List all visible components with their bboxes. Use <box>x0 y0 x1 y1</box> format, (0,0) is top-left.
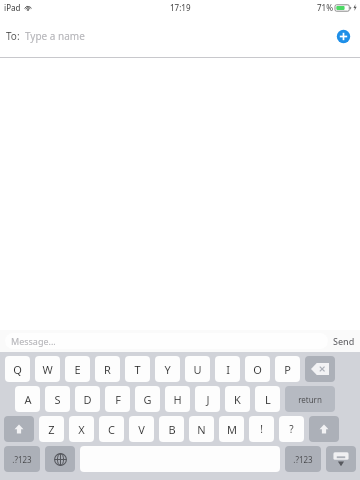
button[interactable]: C <box>99 416 124 442</box>
staticText: J <box>206 392 210 407</box>
staticText: U <box>193 362 202 377</box>
button[interactable]: Add contact <box>334 27 352 45</box>
staticText: F <box>115 392 121 407</box>
button[interactable]: V <box>129 416 154 442</box>
staticText: ? <box>289 422 294 436</box>
button[interactable]: P <box>275 356 300 382</box>
staticText: C <box>108 422 115 437</box>
button[interactable]: .?123 <box>4 446 40 472</box>
button[interactable]: I <box>215 356 240 382</box>
staticText: .?123 <box>293 454 313 465</box>
staticText: E <box>74 362 81 377</box>
staticText: Q <box>13 362 22 377</box>
staticText: ! <box>260 422 263 436</box>
staticText: Message... <box>11 335 56 347</box>
staticText: K <box>234 392 241 407</box>
button[interactable]: ! <box>249 416 274 442</box>
staticText: I <box>226 362 230 377</box>
staticText: iPad <box>4 2 21 13</box>
staticText: N <box>197 422 206 437</box>
button[interactable]: T <box>125 356 150 382</box>
button[interactable]: Change keyboard language <box>45 446 75 472</box>
staticText: G <box>143 392 152 407</box>
staticText: S <box>54 392 61 407</box>
staticText: Z <box>48 422 55 437</box>
button[interactable]: Hide keyboard <box>326 446 356 472</box>
button[interactable]: ? <box>279 416 304 442</box>
button[interactable]: W <box>35 356 60 382</box>
button[interactable]: G <box>135 386 160 412</box>
button[interactable]: A <box>15 386 40 412</box>
button[interactable]: M <box>219 416 244 442</box>
staticText: T <box>134 362 141 377</box>
button[interactable]: B <box>159 416 184 442</box>
button[interactable]: S <box>45 386 70 412</box>
button[interactable]: N <box>189 416 214 442</box>
staticText: D <box>83 392 92 407</box>
button[interactable]: .?123 <box>285 446 321 472</box>
button[interactable]: Type a name <box>25 29 85 43</box>
button[interactable]: Z <box>39 416 64 442</box>
button[interactable]: L <box>255 386 280 412</box>
button[interactable]: Message... <box>5 333 328 349</box>
button[interactable]: J <box>195 386 220 412</box>
staticText: W <box>42 362 53 377</box>
staticText: H <box>173 392 182 407</box>
button[interactable]: Y <box>155 356 180 382</box>
staticText: M <box>227 422 237 437</box>
staticText: return <box>298 394 322 405</box>
staticText: R <box>104 362 111 377</box>
staticText: X <box>78 422 85 437</box>
button[interactable]: return <box>285 386 335 412</box>
button[interactable]: E <box>65 356 90 382</box>
staticText: Send <box>333 335 355 347</box>
staticText: Y <box>164 362 171 377</box>
staticText: L <box>265 392 271 407</box>
button[interactable]: O <box>245 356 270 382</box>
staticText: B <box>168 422 176 437</box>
button[interactable]: X <box>69 416 94 442</box>
button[interactable]: Shift <box>4 416 34 442</box>
staticText: A <box>24 392 32 407</box>
staticText: 17:19 <box>170 2 191 13</box>
button[interactable]: H <box>165 386 190 412</box>
button[interactable]: Send <box>333 335 355 347</box>
staticText: O <box>253 362 262 377</box>
button[interactable]: K <box>225 386 250 412</box>
button[interactable]: Q <box>5 356 30 382</box>
button[interactable]: U <box>185 356 210 382</box>
staticText: V <box>138 422 145 437</box>
staticText: .?123 <box>12 454 32 465</box>
button[interactable]: F <box>105 386 130 412</box>
button[interactable]: D <box>75 386 100 412</box>
button[interactable]: Shift <box>309 416 339 442</box>
staticText: 71% <box>317 2 333 13</box>
button[interactable]: R <box>95 356 120 382</box>
staticText: To: <box>6 29 20 43</box>
button[interactable]: Backspace <box>305 356 335 382</box>
staticText: P <box>284 362 291 377</box>
